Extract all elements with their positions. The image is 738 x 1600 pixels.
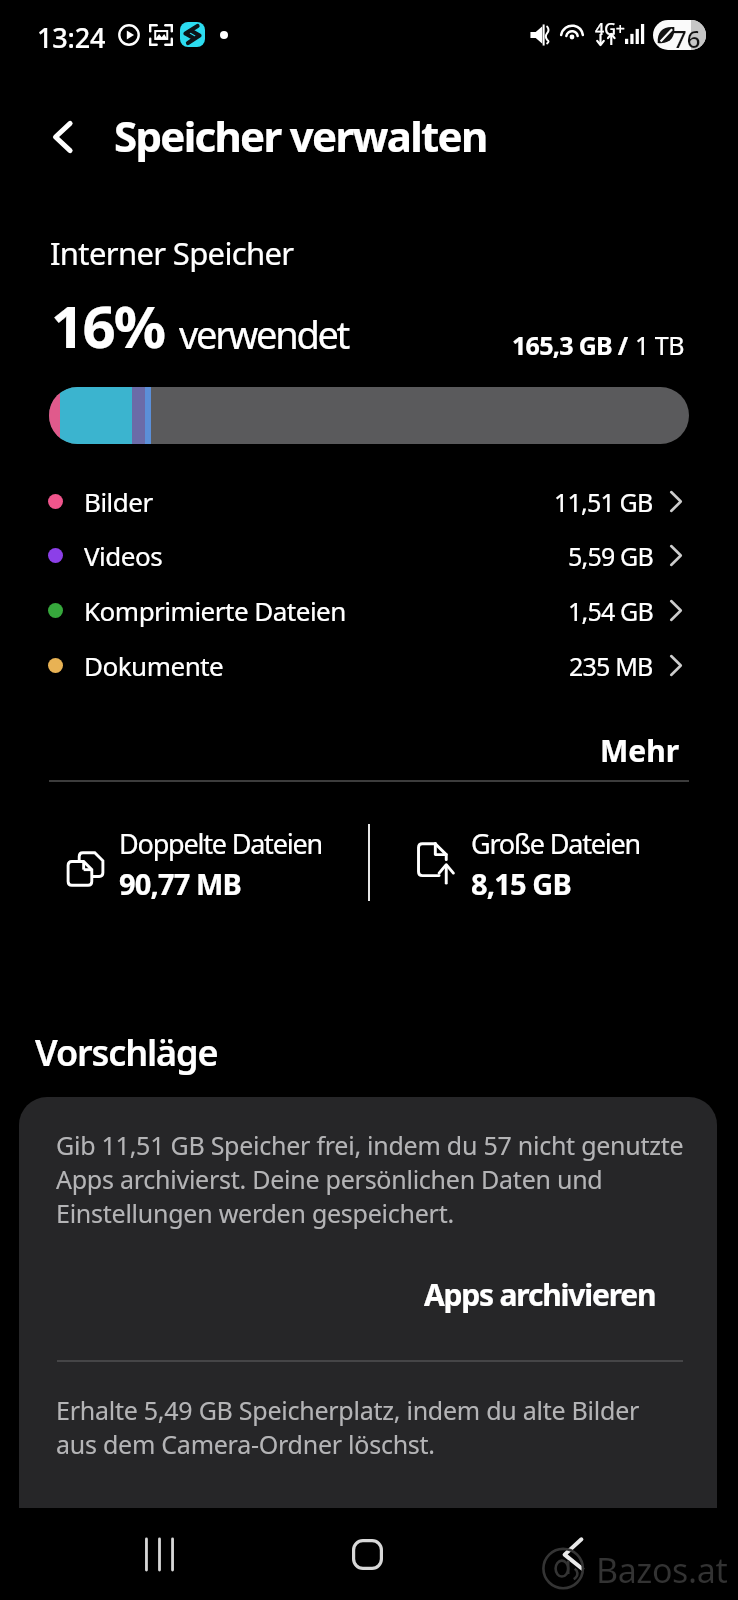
staticText: Interner Speicher [50,232,294,274]
staticText: Doppelte Dateien [119,825,322,862]
staticText: verwendet [179,308,349,360]
staticText: 5,59 GB [568,539,653,573]
staticText: 1,54 GB [568,594,653,628]
staticText: Bazos.at [596,1547,728,1593]
staticText: Mehr [600,730,680,771]
staticText: Bilder [84,484,153,519]
staticText: Dokumente [84,648,224,683]
button[interactable]: Bilder [0,476,738,527]
staticText: Videos [84,538,163,573]
button[interactable]: Apps archivieren [416,1266,664,1323]
staticText: Speicher verwalten [114,107,487,164]
button[interactable]: Doppelte Dateien [22,810,368,915]
staticText: Erhalte 5,49 GB Speicherplatz, indem du … [56,1393,696,1461]
staticText: 8,15 GB [471,864,571,903]
button[interactable]: Große Dateien [374,810,720,915]
button[interactable]: Home [321,1524,413,1584]
staticText: Gib 11,51 GB Speicher frei, indem du 57 … [56,1128,696,1230]
button[interactable]: Recent apps [113,1524,205,1584]
staticText: 165,3 GB / [512,328,628,362]
button[interactable]: Dokumente [0,640,738,691]
staticText: 16% [51,286,165,365]
staticText: 13:24 [37,19,106,56]
staticText: 76 [673,22,701,50]
button[interactable]: Back [527,1524,619,1584]
staticText: Große Dateien [471,825,640,862]
staticText: 235 MB [569,649,653,683]
staticText: 90,77 MB [119,864,241,903]
staticText: 11,51 GB [554,485,653,519]
button[interactable]: Back [38,111,90,163]
staticText: Apps archivieren [424,1274,656,1315]
button[interactable]: Mehr [588,722,692,779]
button[interactable]: Komprimierte Dateien [0,585,738,636]
staticText: 1 TB [635,328,684,362]
staticText: Vorschläge [35,1028,218,1077]
button[interactable]: Videos [0,530,738,581]
staticText: 4G+ [595,18,625,40]
staticText: Komprimierte Dateien [84,593,346,628]
